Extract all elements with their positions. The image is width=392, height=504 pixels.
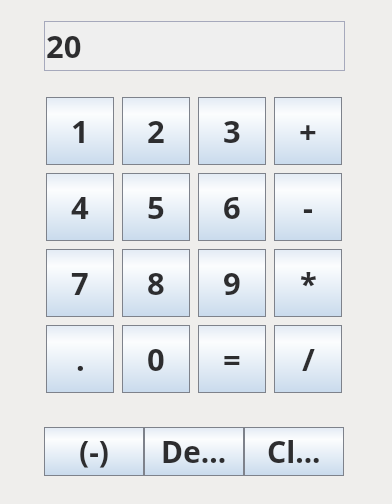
button[interactable]: 1 [46, 97, 114, 165]
button[interactable]: 6 [198, 173, 266, 241]
button[interactable]: 0 [122, 325, 190, 393]
staticText: / [302, 338, 315, 380]
staticText: * [300, 262, 317, 304]
button[interactable]: / [274, 325, 342, 393]
staticText: 8 [147, 262, 165, 304]
button[interactable]: 9 [198, 249, 266, 317]
button[interactable]: 8 [122, 249, 190, 317]
staticText: + [299, 110, 317, 152]
staticText: 4 [71, 186, 89, 228]
staticText: 3 [223, 110, 241, 152]
button[interactable]: Cl... [244, 427, 344, 476]
staticText: (-) [79, 431, 109, 472]
button[interactable]: 5 [122, 173, 190, 241]
staticText: 5 [147, 186, 165, 228]
button[interactable]: (-) [44, 427, 144, 476]
staticText: 20 [46, 25, 82, 67]
button[interactable]: * [274, 249, 342, 317]
staticText: 0 [147, 338, 165, 380]
button[interactable]: 20 [44, 21, 345, 71]
button[interactable]: 7 [46, 249, 114, 317]
staticText: . [76, 338, 85, 380]
button[interactable]: De... [144, 427, 244, 476]
button[interactable]: = [198, 325, 266, 393]
staticText: De... [161, 431, 227, 472]
button[interactable]: 4 [46, 173, 114, 241]
staticText: = [223, 338, 241, 380]
button[interactable]: - [274, 173, 342, 241]
staticText: - [303, 186, 313, 228]
staticText: 1 [71, 110, 89, 152]
button[interactable]: 3 [198, 97, 266, 165]
button[interactable]: 2 [122, 97, 190, 165]
staticText: 7 [71, 262, 89, 304]
button[interactable]: . [46, 325, 114, 393]
staticText: 2 [147, 110, 165, 152]
button[interactable]: + [274, 97, 342, 165]
staticText: Cl... [267, 431, 321, 472]
staticText: 9 [223, 262, 241, 304]
staticText: 6 [223, 186, 241, 228]
